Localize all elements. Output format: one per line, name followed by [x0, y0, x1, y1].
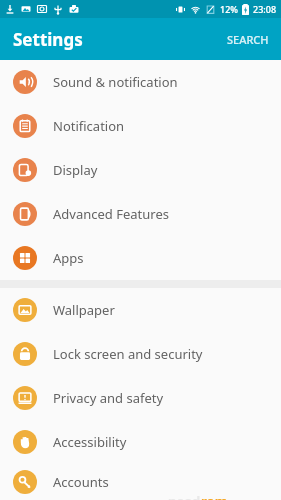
staticText: Sound & notification — [53, 73, 178, 91]
staticText: Advanced Features — [53, 205, 169, 223]
button[interactable]: Advanced Features — [0, 192, 281, 236]
button[interactable]: Sound & notification — [0, 60, 281, 104]
button[interactable]: Apps — [0, 236, 281, 280]
staticText: Accounts — [53, 473, 109, 491]
button[interactable]: Notification — [0, 104, 281, 148]
staticText: rom — [201, 492, 228, 500]
button[interactable]: Accessibility — [0, 420, 281, 464]
staticText: Wallpaper — [53, 301, 115, 319]
staticText: Privacy and safety — [53, 389, 164, 407]
staticText: SEARCH — [227, 32, 269, 47]
staticText: 23:08 — [253, 3, 277, 15]
staticText: need — [168, 492, 201, 500]
staticText: Lock screen and security — [53, 345, 203, 363]
button[interactable]: Privacy and safety — [0, 376, 281, 420]
button[interactable]: Display — [0, 148, 281, 192]
staticText: 12% — [220, 3, 238, 15]
staticText: Display — [53, 161, 98, 179]
button[interactable]: Lock screen and security — [0, 332, 281, 376]
staticText: Notification — [53, 117, 125, 135]
staticText: Settings — [13, 28, 83, 51]
button[interactable]: Accounts — [0, 464, 281, 500]
button[interactable]: SEARCH — [215, 22, 281, 57]
button[interactable]: Wallpaper — [0, 288, 281, 332]
staticText: Apps — [53, 249, 84, 267]
staticText: Accessibility — [53, 433, 127, 451]
